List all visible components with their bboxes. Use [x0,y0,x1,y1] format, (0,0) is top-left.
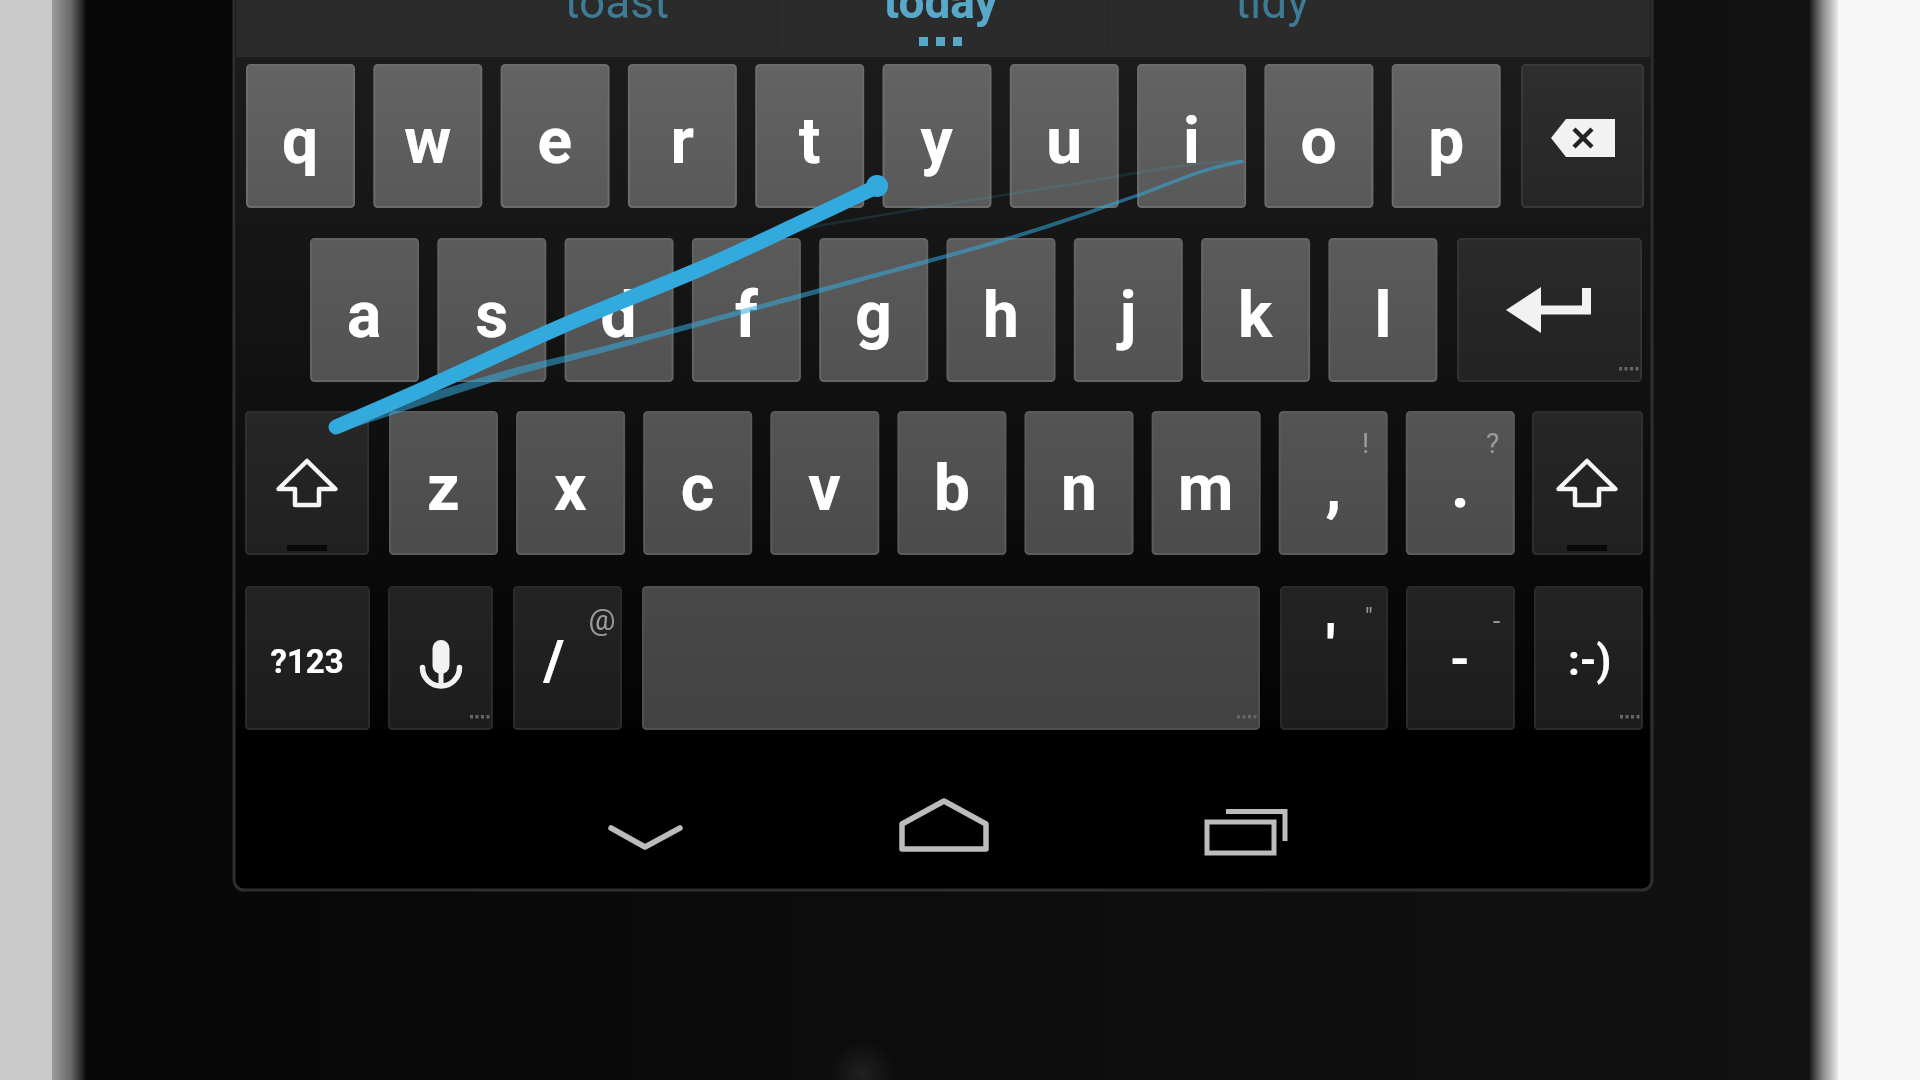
button[interactable]: p [1392,65,1499,207]
button[interactable]: t [756,65,863,207]
button[interactable]: . [1406,412,1513,554]
button[interactable]: , [1279,412,1386,554]
button[interactable]: l [1329,239,1436,381]
button[interactable]: c [644,412,751,554]
button[interactable]: Delete [1522,65,1643,207]
button[interactable]: m [1152,412,1259,554]
button[interactable]: s [438,239,545,381]
button[interactable]: Voice input [389,587,492,729]
button[interactable]: o [1265,65,1372,207]
button[interactable]: i [1138,65,1245,207]
button[interactable]: Enter [1458,239,1641,381]
button[interactable]: u [1010,65,1117,207]
button[interactable]: Hyphen [1407,587,1514,729]
button[interactable]: v [771,412,878,554]
button[interactable]: h [947,239,1054,381]
button[interactable]: Recent apps [1160,760,1332,888]
button[interactable]: b [898,412,1005,554]
button[interactable]: Suggestion today [777,0,1107,57]
button[interactable]: z [390,412,497,554]
button[interactable]: w [374,65,481,207]
button[interactable]: Shift [246,412,368,554]
button[interactable]: q [247,65,354,207]
button[interactable]: a [311,239,418,381]
button[interactable]: d [565,239,672,381]
button[interactable]: r [628,65,735,207]
button[interactable]: f [692,239,799,381]
button[interactable]: x [517,412,624,554]
button[interactable]: Shift [1533,412,1642,554]
button[interactable]: Symbols [246,587,369,729]
button[interactable]: y [883,65,990,207]
button[interactable]: k [1202,239,1309,381]
button[interactable]: Suggestion toast [236,0,777,57]
button[interactable]: j [1074,239,1181,381]
button[interactable]: n [1025,412,1132,554]
button[interactable]: Slash [514,587,621,729]
button[interactable]: Suggestion tidy [1107,0,1650,57]
button[interactable]: Home [858,760,1030,888]
button[interactable]: e [501,65,608,207]
button[interactable]: Hide keyboard [560,760,732,888]
button[interactable]: g [820,239,927,381]
button[interactable]: Apostrophe [1281,587,1387,729]
button[interactable]: Emoticon [1535,587,1642,729]
